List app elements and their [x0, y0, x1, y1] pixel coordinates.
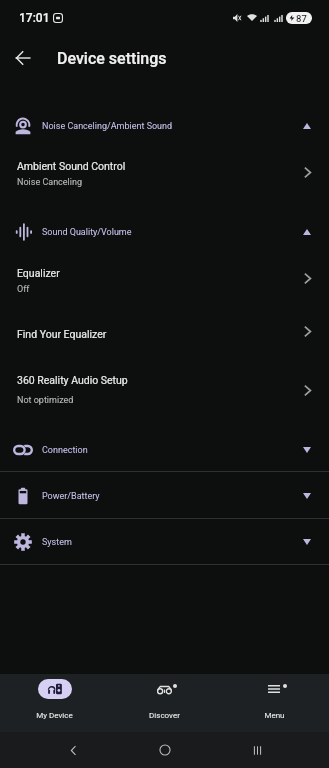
- button[interactable]: Back: [5, 40, 41, 76]
- button[interactable]: Find Your Equalizer: [0, 310, 329, 355]
- staticText: My Device: [36, 711, 73, 720]
- staticText: Off: [17, 284, 30, 295]
- button[interactable]: System: [0, 519, 329, 564]
- staticText: Equalizer: [17, 267, 60, 279]
- staticText: Not optimized: [17, 395, 74, 406]
- button[interactable]: Equalizer: [0, 254, 329, 309]
- button[interactable]: Power/Battery: [0, 473, 329, 518]
- staticText: Menu: [264, 711, 285, 720]
- staticText: Discover: [149, 711, 180, 720]
- button[interactable]: Menu: [219, 674, 329, 732]
- button[interactable]: Home: [145, 732, 185, 768]
- staticText: 360 Reality Audio Setup: [17, 374, 128, 386]
- button[interactable]: My Device: [0, 674, 109, 732]
- staticText: Device settings: [57, 49, 167, 68]
- button[interactable]: Connection: [0, 427, 329, 472]
- button[interactable]: Ambient Sound Control: [0, 148, 329, 203]
- button[interactable]: Back: [53, 732, 93, 768]
- staticText: Noise Canceling: [17, 177, 82, 188]
- staticText: Noise Canceling/Ambient Sound: [42, 121, 173, 132]
- staticText: Ambient Sound Control: [17, 160, 126, 172]
- staticText: System: [42, 537, 72, 548]
- button[interactable]: Discover: [109, 674, 219, 732]
- button[interactable]: 360 Reality Audio Setup: [0, 355, 329, 410]
- staticText: Power/Battery: [42, 491, 100, 502]
- staticText: Connection: [42, 445, 88, 456]
- staticText: 87: [296, 13, 307, 24]
- staticText: 17:01: [19, 11, 50, 25]
- button[interactable]: Noise Canceling/Ambient Sound: [0, 103, 329, 148]
- button[interactable]: Recent apps: [237, 732, 277, 768]
- staticText: Sound Quality/Volume: [42, 227, 132, 238]
- staticText: Find Your Equalizer: [17, 328, 107, 340]
- button[interactable]: Sound Quality/Volume: [0, 209, 329, 254]
